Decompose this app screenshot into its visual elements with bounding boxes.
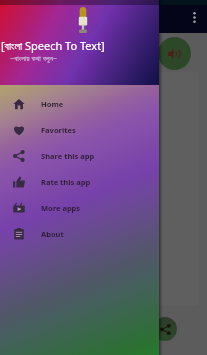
staticText: More apps — [41, 203, 81, 213]
button[interactable]: Speak — [158, 37, 191, 70]
button[interactable]: More options — [186, 9, 203, 26]
staticText: About — [41, 229, 64, 239]
staticText: ~বাংলায় কথা বলুন~ — [10, 53, 58, 63]
button[interactable]: Favorites — [0, 117, 159, 143]
button[interactable]: Rate this app — [0, 169, 159, 195]
button[interactable]: More apps — [0, 195, 159, 221]
staticText: Favorites — [41, 125, 76, 135]
button[interactable]: About — [0, 221, 159, 247]
staticText: Rate this app — [41, 177, 91, 187]
staticText: Share this app — [41, 151, 95, 161]
button[interactable]: Share this app — [0, 143, 159, 169]
button[interactable]: Home — [0, 91, 159, 117]
staticText: Home — [41, 99, 64, 109]
staticText: [বাংলা Speech To Text] — [1, 38, 105, 53]
button[interactable]: Share — [153, 317, 177, 341]
